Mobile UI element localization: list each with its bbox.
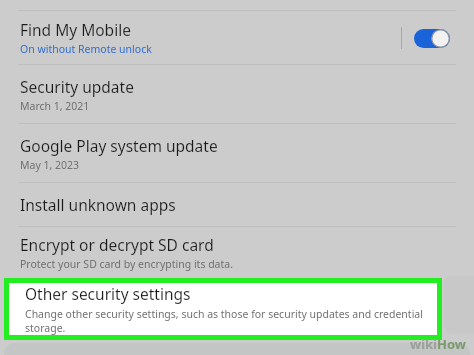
staticText: Protect your SD card by encrypting its d… bbox=[20, 257, 233, 271]
staticText: wiki bbox=[410, 335, 437, 353]
staticText: Encrypt or decrypt SD card bbox=[20, 234, 214, 255]
staticText: Other security settings bbox=[25, 283, 191, 304]
staticText: How bbox=[437, 335, 466, 353]
button[interactable]: Find My Mobile bbox=[0, 11, 474, 64]
staticText: On without Remote unlock bbox=[20, 42, 152, 56]
button[interactable]: Install unknown apps bbox=[0, 183, 474, 226]
button[interactable]: Find My Mobile toggle, on bbox=[414, 29, 450, 48]
staticText: March 1, 2021 bbox=[20, 99, 90, 113]
staticText: Google Play system update bbox=[20, 135, 218, 156]
button[interactable]: Google Play system update bbox=[0, 124, 474, 182]
staticText: Find My Mobile bbox=[20, 19, 131, 40]
button[interactable]: Other security settings bbox=[9, 283, 437, 335]
staticText: Security update bbox=[20, 76, 134, 97]
staticText: Change other security settings, such as … bbox=[25, 307, 429, 335]
staticText: Install unknown apps bbox=[20, 194, 176, 215]
button[interactable]: Security update bbox=[0, 65, 474, 123]
staticText: May 1, 2023 bbox=[20, 158, 80, 172]
button[interactable]: Encrypt or decrypt SD card bbox=[0, 227, 474, 277]
